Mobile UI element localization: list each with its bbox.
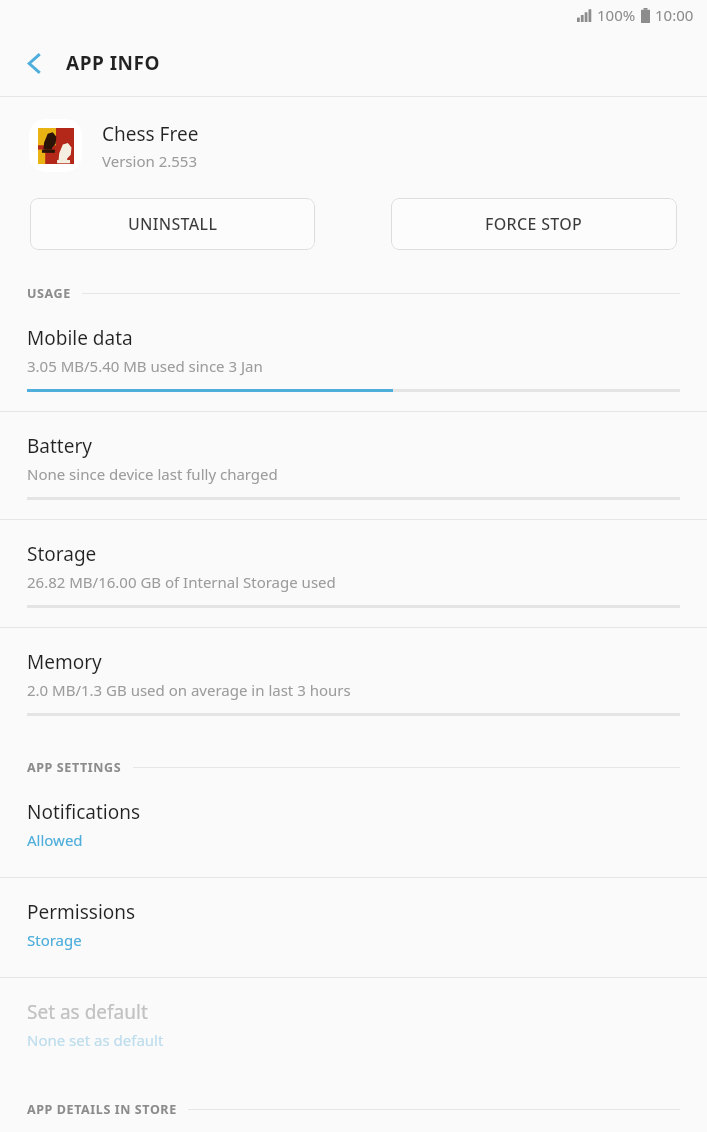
button[interactable]: Mobile data [0,325,707,411]
button[interactable]: Memory [0,649,707,735]
staticText: APP INFO [66,50,160,76]
staticText: 2.0 MB/1.3 GB used on average in last 3 … [27,680,351,700]
staticText: 3.05 MB/5.40 MB used since 3 Jan [27,356,263,376]
staticText: 100% [597,5,636,25]
staticText: APP SETTINGS [27,759,122,776]
staticText: Version 2.553 [102,151,197,171]
staticText: FORCE STOP [485,213,583,235]
button[interactable]: UNINSTALL [30,198,315,250]
staticText: Permissions [27,899,136,925]
staticText: 26.82 MB/16.00 GB of Internal Storage us… [27,572,336,592]
button[interactable]: Notifications [0,799,707,877]
staticText: Set as default [27,999,148,1025]
button[interactable]: Battery [0,433,707,519]
button[interactable]: Back [17,46,51,80]
staticText: UNINSTALL [128,213,218,235]
button[interactable]: Permissions [0,899,707,977]
button[interactable]: Storage [0,541,707,627]
staticText: Chess Free [102,121,199,147]
staticText: Storage [27,541,97,567]
staticText: None since device last fully charged [27,464,278,484]
staticText: Notifications [27,799,141,825]
button[interactable]: FORCE STOP [391,198,677,250]
staticText: USAGE [27,285,71,302]
staticText: 10:00 [655,5,694,25]
staticText: Battery [27,433,92,459]
staticText: Storage [27,930,82,950]
button: Set as default [0,999,707,1077]
staticText: Memory [27,649,102,675]
staticText: Allowed [27,830,83,850]
staticText: APP DETAILS IN STORE [27,1101,177,1118]
staticText: None set as default [27,1030,164,1050]
staticText: Mobile data [27,325,133,351]
